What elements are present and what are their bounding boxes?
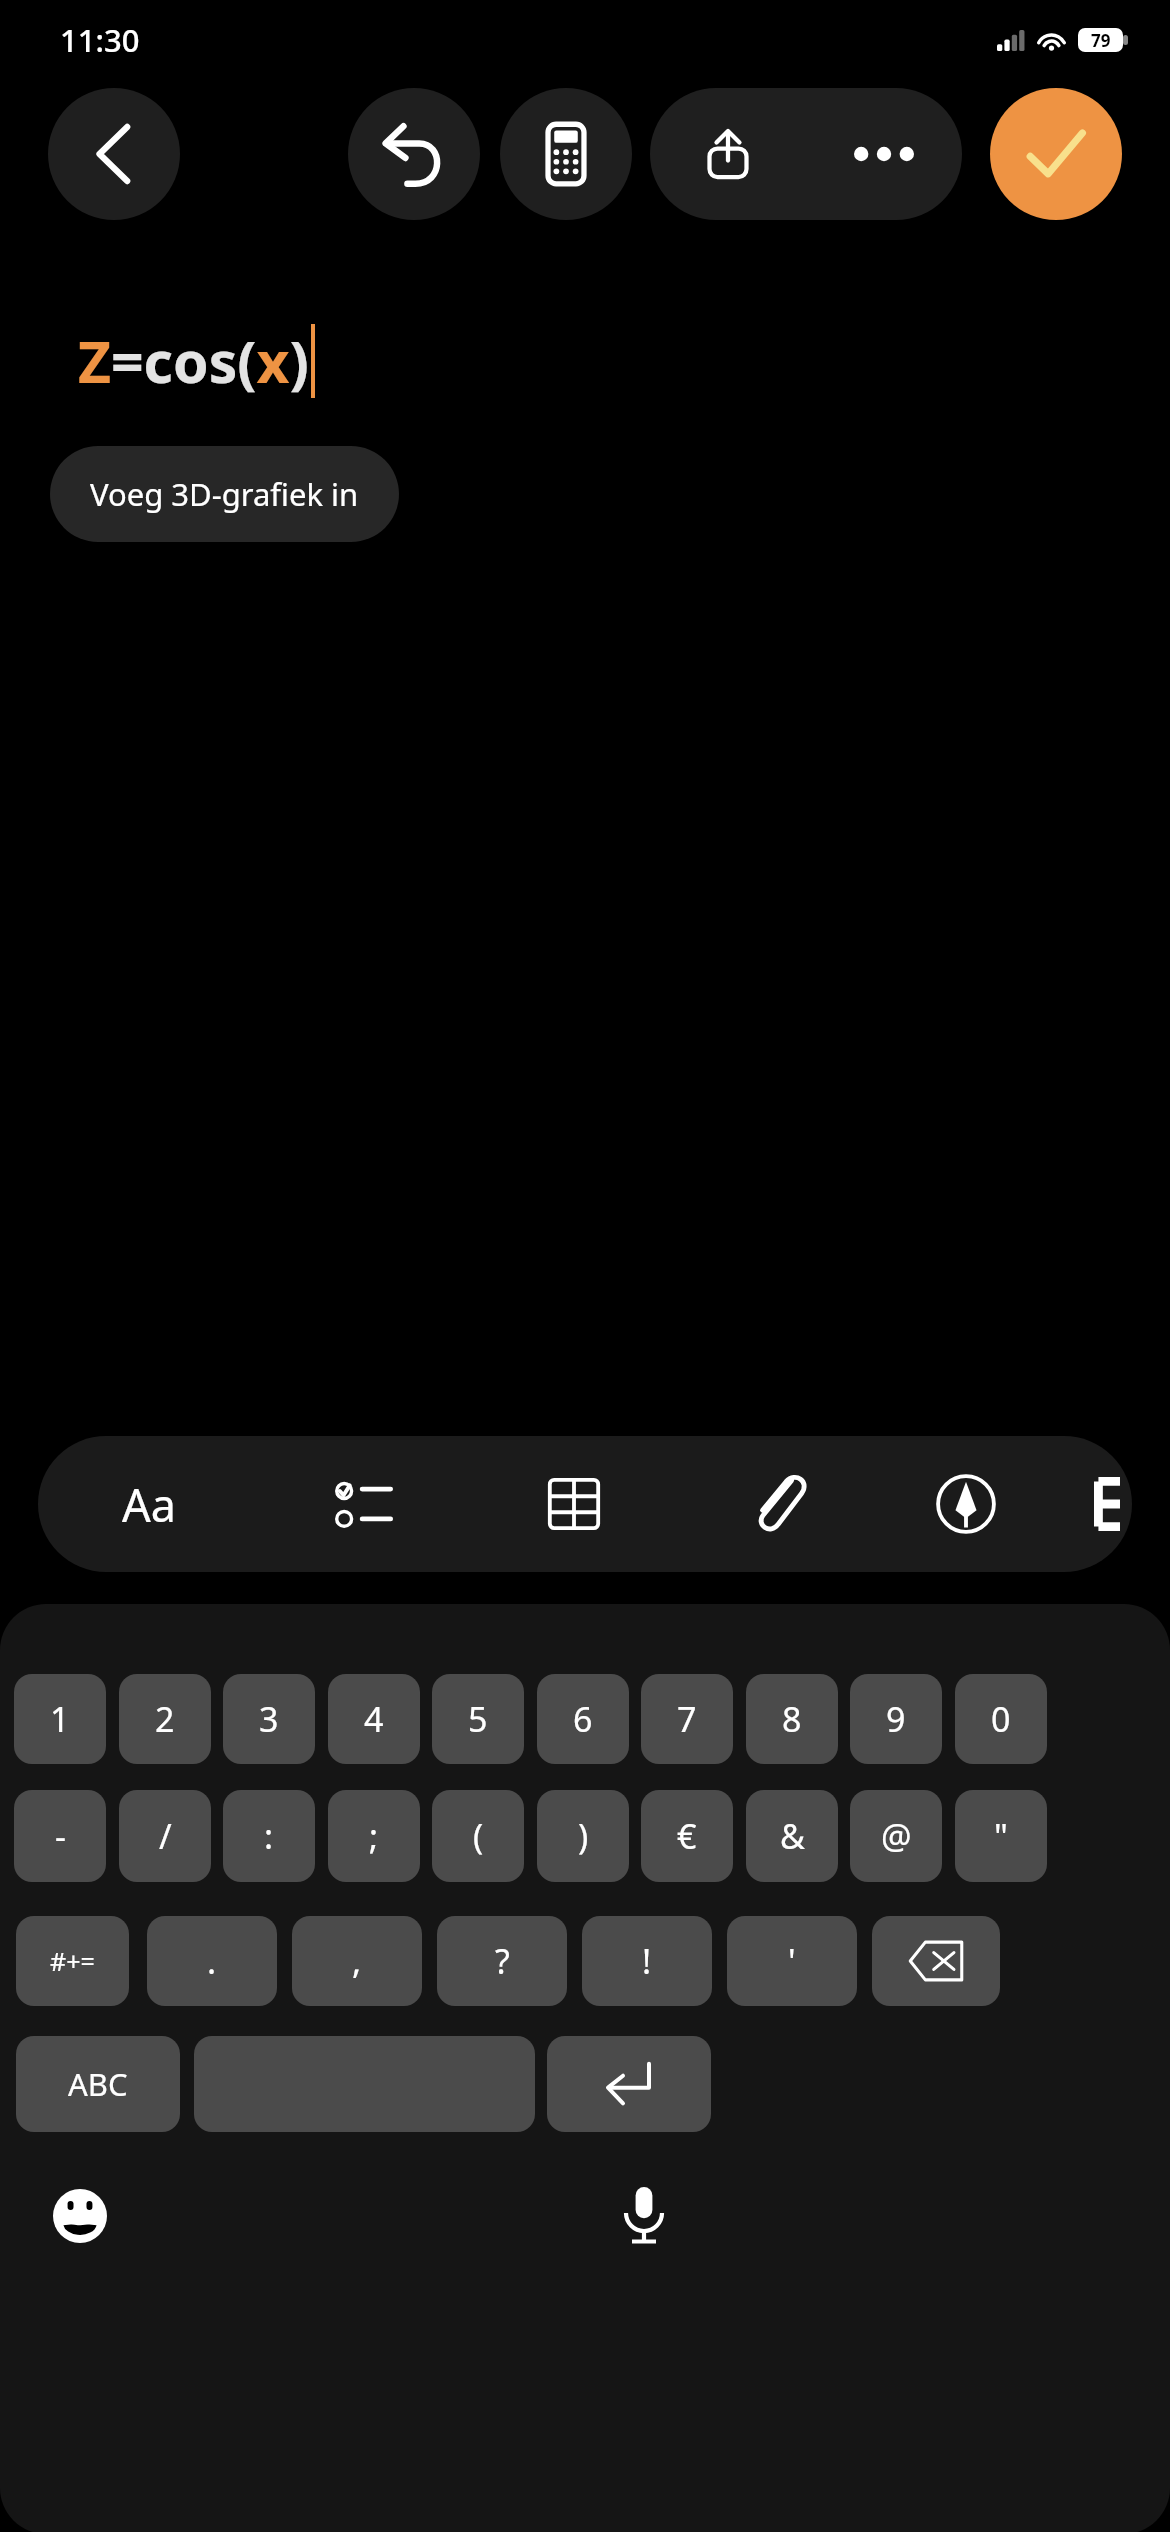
button[interactable]: ! [582,1916,712,2006]
staticText: , [352,1938,362,1984]
button[interactable]: Back [48,88,180,220]
button[interactable]: Aa [84,1436,214,1572]
staticText: Voeg 3D-grafiek in [90,473,359,515]
staticText: 11:30 [60,19,140,61]
staticText: 4 [364,1696,384,1742]
staticText: - [55,1813,66,1859]
button[interactable]: - [14,1790,106,1882]
button[interactable]: Undo [348,88,480,220]
button[interactable]: #+= [16,1916,129,2006]
button[interactable]: Voeg 3D-grafiek in [50,446,399,542]
button[interactable]: ' [727,1916,857,2006]
button[interactable]: Return [547,2036,711,2132]
staticText: @ [881,1813,912,1859]
button[interactable]: / [119,1790,211,1882]
button[interactable]: 7 [641,1674,733,1764]
staticText: 5 [468,1696,488,1742]
button[interactable]: 9 [850,1674,942,1764]
staticText: 8 [782,1696,802,1742]
button[interactable]: ? [437,1916,567,2006]
button[interactable]: Share [650,88,806,220]
staticText: ABC [68,2063,128,2105]
staticText: 0 [991,1696,1011,1742]
button[interactable]: ) [537,1790,629,1882]
button[interactable]: @ [850,1790,942,1882]
staticText: ? [495,1938,510,1984]
button[interactable]: 6 [537,1674,629,1764]
staticText: 9 [886,1696,906,1742]
button[interactable]: Checklist [304,1436,424,1572]
button[interactable]: € [641,1790,733,1882]
button[interactable]: ( [432,1790,524,1882]
button[interactable]: , [292,1916,422,2006]
staticText: 1 [50,1696,70,1742]
button[interactable]: Table [514,1436,634,1572]
button[interactable]: Draw [906,1436,1026,1572]
staticText: #+= [50,1944,95,1978]
staticText: ) [578,1813,589,1859]
button[interactable]: & [746,1790,838,1882]
staticText: ' [788,1938,796,1984]
staticText: / [159,1813,172,1859]
staticText: € [677,1813,697,1859]
button[interactable]: Done [990,88,1122,220]
staticText: ; [369,1813,379,1859]
staticText: & [780,1813,805,1859]
button[interactable]: 1 [14,1674,106,1764]
staticText: : [264,1813,274,1859]
staticText: 3 [259,1696,279,1742]
staticText: 6 [573,1696,593,1742]
button[interactable]: 8 [746,1674,838,1764]
button[interactable]: Attach [718,1436,838,1572]
staticText: . [207,1938,217,1984]
button[interactable]: Space [194,2036,535,2132]
button[interactable]: : [223,1790,315,1882]
staticText: Z=cos(x) [78,322,309,400]
staticText: 79 [1091,29,1111,52]
button[interactable]: More options [806,88,962,220]
button[interactable]: . [147,1916,277,2006]
button[interactable]: 0 [955,1674,1047,1764]
button[interactable]: Calculator [500,88,632,220]
button[interactable]: Voice input [596,2168,692,2264]
staticText: 2 [155,1696,175,1742]
button[interactable]: Backspace [872,1916,1000,2006]
staticText: ! [642,1938,652,1984]
button[interactable]: ; [328,1790,420,1882]
button[interactable]: 4 [328,1674,420,1764]
staticText: Aa [122,1474,177,1535]
button[interactable]: ABC [16,2036,180,2132]
staticText: " [994,1813,1008,1859]
button[interactable]: 2 [119,1674,211,1764]
button[interactable]: Emoji [32,2168,128,2264]
button[interactable]: 3 [223,1674,315,1764]
button[interactable]: " [955,1790,1047,1882]
staticText: 7 [677,1696,697,1742]
staticText: ( [473,1813,484,1859]
button[interactable]: 5 [432,1674,524,1764]
